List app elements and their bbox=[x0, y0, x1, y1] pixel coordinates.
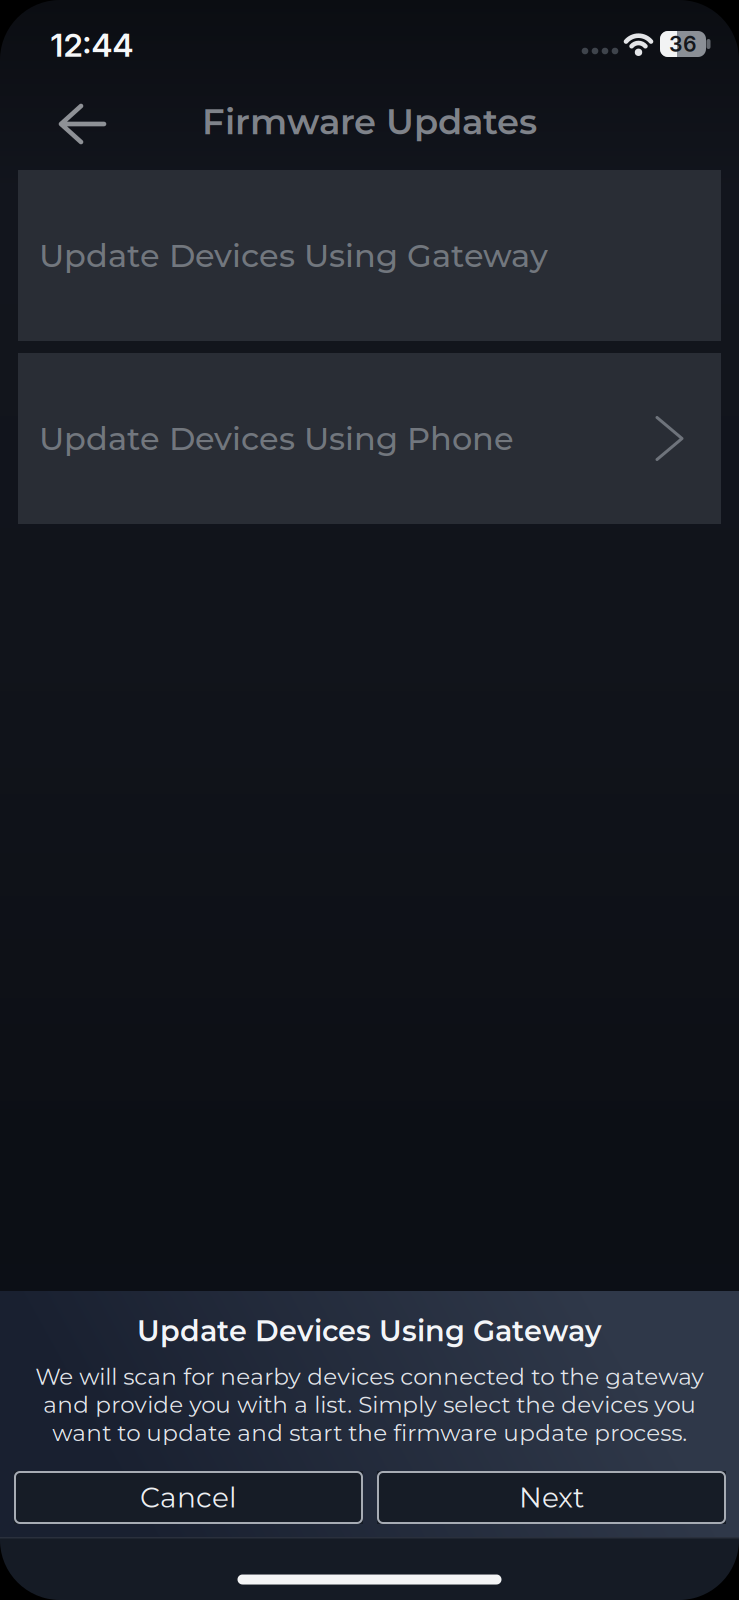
button[interactable]: Next bbox=[377, 1471, 726, 1524]
button[interactable]: Back bbox=[60, 104, 106, 144]
staticText: Cancel bbox=[140, 1480, 237, 1514]
button[interactable]: Cancel bbox=[14, 1471, 363, 1524]
button[interactable]: Update Devices Using Phone bbox=[18, 353, 721, 524]
staticText: Firmware Updates bbox=[202, 100, 537, 143]
staticText: We will scan for nearby devices connecte… bbox=[35, 1362, 704, 1447]
staticText: Next bbox=[519, 1480, 584, 1514]
staticText: Update Devices Using Gateway bbox=[137, 1313, 602, 1348]
staticText: Update Devices Using Gateway bbox=[39, 236, 548, 275]
staticText: Update Devices Using Phone bbox=[39, 419, 514, 458]
staticText: 12:44 bbox=[50, 26, 133, 64]
button[interactable]: Update Devices Using Gateway bbox=[18, 170, 721, 341]
staticText: 36 bbox=[669, 31, 697, 57]
